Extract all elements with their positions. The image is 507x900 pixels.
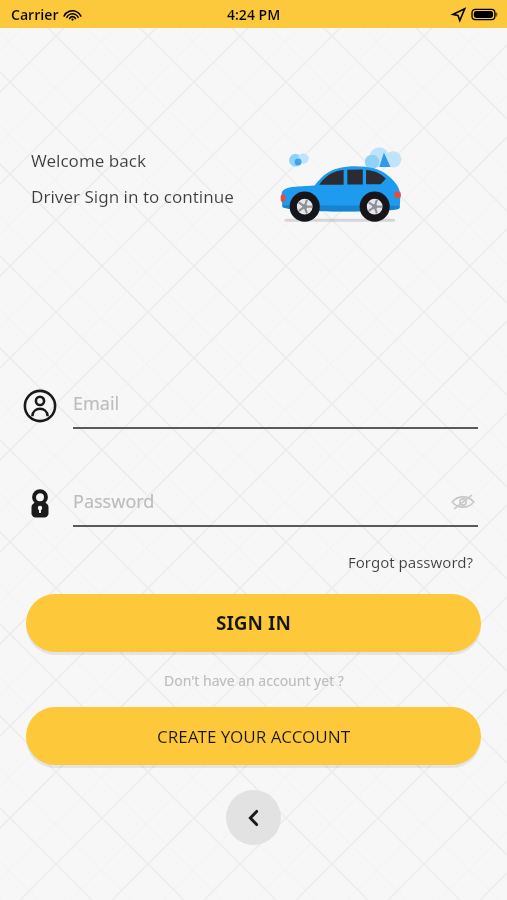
- staticText: Driver Sign in to continue: [31, 185, 234, 208]
- staticText: 4:24 PM: [227, 5, 281, 24]
- button[interactable]: Password: [0, 481, 507, 527]
- staticText: Carrier: [11, 5, 59, 24]
- staticText: Email: [73, 391, 120, 416]
- staticText: Don't have an account yet ?: [164, 671, 344, 690]
- button[interactable]: Back: [226, 790, 281, 845]
- staticText: CREATE YOUR ACCOUNT: [157, 725, 351, 748]
- button[interactable]: Don't have an account yet ?: [160, 667, 348, 694]
- button[interactable]: SIGN IN: [26, 594, 481, 652]
- staticText: Password: [73, 489, 155, 514]
- staticText: SIGN IN: [216, 610, 291, 636]
- other: Show password: [448, 487, 478, 517]
- button[interactable]: CREATE YOUR ACCOUNT: [26, 707, 481, 765]
- staticText: Welcome back: [31, 149, 147, 172]
- button[interactable]: Email: [0, 383, 507, 429]
- staticText: Forgot password?: [348, 552, 474, 572]
- button[interactable]: Forgot password?: [344, 548, 478, 576]
